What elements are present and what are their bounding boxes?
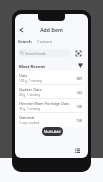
staticText: Add Item [15,27,88,34]
button[interactable]: Quaker Oats [17,85,85,99]
button[interactable]: Search [18,39,32,45]
button[interactable]: List options [74,147,81,154]
button[interactable]: Filter [77,62,84,69]
staticText: 35 g, 1 serving [19,107,41,111]
staticText: Quaker Oats [19,87,42,92]
staticText: Oatmeal [19,115,35,120]
button[interactable]: Oatmeal [17,113,85,127]
staticText: Search foods [25,51,46,56]
staticText: 100 g, 1 serving [19,79,42,83]
staticText: 138 [76,104,83,109]
button[interactable]: Custom [37,39,53,45]
staticText: 158 [76,118,83,123]
staticText: Search [18,39,32,45]
staticText: Custom [37,39,53,45]
staticText: Multi-Add [44,129,61,134]
staticText: Heroine Mom Porridge Oats [19,101,70,106]
button[interactable]: Search foods [18,49,70,57]
staticText: 389 [76,76,83,81]
staticText: 1 cup, cooked [19,121,40,125]
staticText: Oats [19,73,28,78]
staticText: 40 g, 1 serving [19,93,41,97]
staticText: 142 [76,90,83,95]
button[interactable]: Scan barcode [74,49,82,57]
staticText: Most Recent [19,64,46,70]
button[interactable]: Back [17,26,25,34]
button[interactable]: Heroine Mom Porridge Oats [17,99,85,113]
button[interactable]: Oats [17,71,85,85]
button[interactable]: Multi-Add [42,127,63,136]
